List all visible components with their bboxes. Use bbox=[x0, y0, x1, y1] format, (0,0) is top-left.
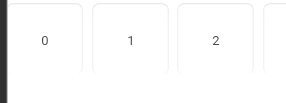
staticText: 1 bbox=[127, 33, 135, 48]
button[interactable]: 1 bbox=[92, 3, 169, 74]
button[interactable]: 2 bbox=[177, 3, 254, 74]
staticText: 0 bbox=[41, 33, 49, 48]
button[interactable]: 3 bbox=[263, 3, 286, 74]
staticText: 2 bbox=[212, 33, 220, 48]
button[interactable]: 0 bbox=[6, 3, 83, 74]
button[interactable]: Open navigation drawer bbox=[0, 0, 8, 103]
